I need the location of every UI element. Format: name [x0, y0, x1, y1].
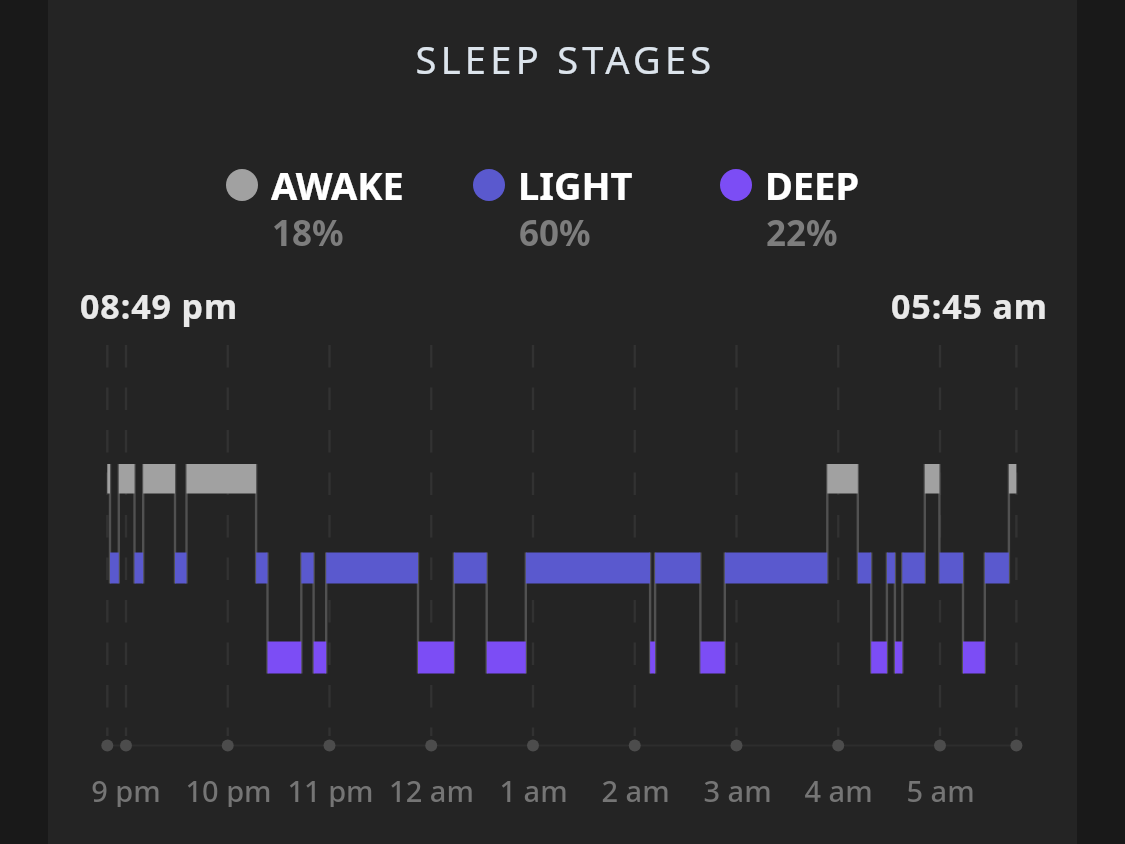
button[interactable]: DEEP 22% [720, 159, 846, 259]
staticText: 08:49 pm [80, 283, 239, 329]
staticText: 1 am [499, 771, 568, 807]
staticText: 2 am [601, 771, 670, 807]
staticText: 60% [519, 209, 591, 257]
staticText: 18% [272, 209, 344, 257]
staticText: 11 pm [287, 771, 374, 807]
staticText: 4 am [804, 771, 873, 807]
staticText: SLEEP STAGES [51, 33, 1080, 844]
staticText: 12 am [389, 771, 474, 807]
staticText: 9 pm [91, 771, 161, 807]
staticText: 10 pm [185, 771, 272, 807]
button[interactable]: AWAKE 18% [226, 159, 391, 259]
staticText: 3 am [703, 771, 772, 807]
staticText: LIGHT [518, 159, 633, 211]
staticText: 22% [766, 209, 838, 257]
button[interactable]: LIGHT 60% [473, 159, 620, 259]
staticText: AWAKE [271, 159, 404, 211]
staticText: 5 am [906, 771, 975, 807]
staticText: 05:45 am [891, 283, 1048, 329]
staticText: DEEP [765, 159, 859, 211]
